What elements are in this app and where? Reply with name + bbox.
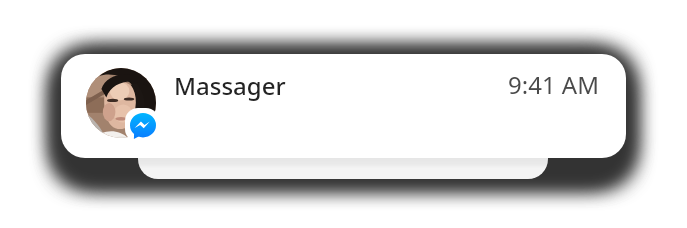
staticText: Massager xyxy=(174,69,286,102)
button[interactable]: Messenger xyxy=(61,54,626,158)
other: Messenger xyxy=(130,113,156,139)
staticText: 9:41 AM xyxy=(508,68,599,101)
button[interactable] xyxy=(138,120,548,179)
